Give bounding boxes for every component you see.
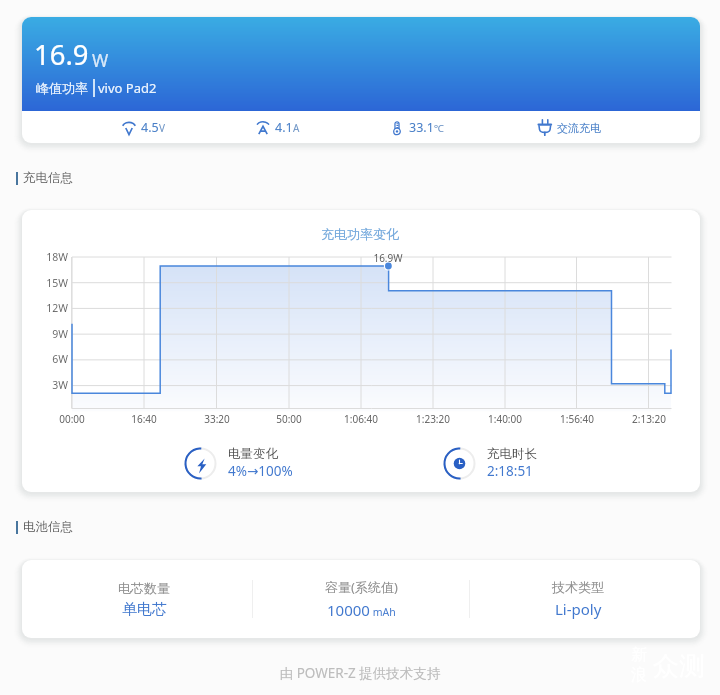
staticText: A (293, 121, 300, 135)
staticText: 4.1 (275, 119, 293, 136)
staticText: vivo Pad2 (98, 79, 157, 97)
staticText: 16.9 (34, 36, 89, 73)
other: Temperature (390, 121, 404, 135)
staticText: 1:23:20 (398, 412, 468, 426)
staticText: 电量变化 (228, 446, 278, 462)
other: Current (256, 121, 270, 135)
staticText: W (92, 48, 109, 72)
staticText: 2:18:51 (487, 462, 533, 480)
staticText: V (159, 121, 165, 135)
staticText: 技术类型 (552, 579, 604, 595)
staticText: 峰值功率 (36, 80, 88, 96)
other: AC charging (537, 119, 552, 136)
button[interactable]: 充电时长 (442, 446, 572, 480)
staticText: 33.1 (409, 119, 434, 136)
staticText: 充电时长 (487, 446, 537, 462)
staticText: 电芯数量 (118, 580, 170, 596)
staticText: 充电功率变化 (260, 226, 460, 242)
button[interactable]: 16.9 (22, 17, 700, 111)
staticText: 充电信息 (23, 170, 73, 186)
staticText: Li-poly (555, 599, 602, 619)
button[interactable]: 容量(系统值) (253, 578, 469, 620)
button[interactable]: 电量变化 (183, 446, 313, 480)
staticText: 2:13:20 (614, 412, 684, 426)
button[interactable]: AC charging (509, 111, 629, 143)
staticText: 16:40 (109, 412, 179, 426)
staticText: 容量(系统值) (325, 578, 398, 596)
staticText: ℃ (434, 121, 444, 135)
button[interactable]: Voltage (83, 111, 203, 143)
staticText: 电池信息 (23, 519, 73, 535)
staticText: 18W (22, 250, 68, 264)
staticText: 1:40:00 (470, 412, 540, 426)
staticText: 10000 (327, 600, 370, 620)
staticText: 3W (22, 378, 68, 392)
button[interactable]: Current (218, 111, 338, 143)
staticText: 16.9W (353, 251, 423, 265)
button[interactable]: 技术类型 (470, 579, 686, 619)
staticText: 1:06:40 (326, 412, 396, 426)
staticText: 12W (22, 301, 68, 315)
staticText: 4%→100% (228, 462, 293, 480)
staticText: 00:00 (37, 412, 107, 426)
button[interactable]: Temperature (357, 111, 477, 143)
staticText: 6W (22, 352, 68, 366)
staticText: mAh (370, 605, 396, 619)
button[interactable]: 电芯数量 (36, 580, 252, 619)
staticText: 50:00 (254, 412, 324, 426)
staticText: 15W (22, 276, 68, 290)
staticText: 由 POWER-Z 提供技术支持 (200, 664, 520, 682)
staticText: 单电芯 (122, 600, 167, 619)
staticText: 33:20 (182, 412, 252, 426)
staticText: 交流充电 (557, 121, 601, 135)
staticText: 1:56:40 (542, 412, 612, 426)
staticText: 4.5 (141, 119, 159, 136)
staticText: 9W (22, 327, 68, 341)
other: Voltage (122, 121, 136, 135)
